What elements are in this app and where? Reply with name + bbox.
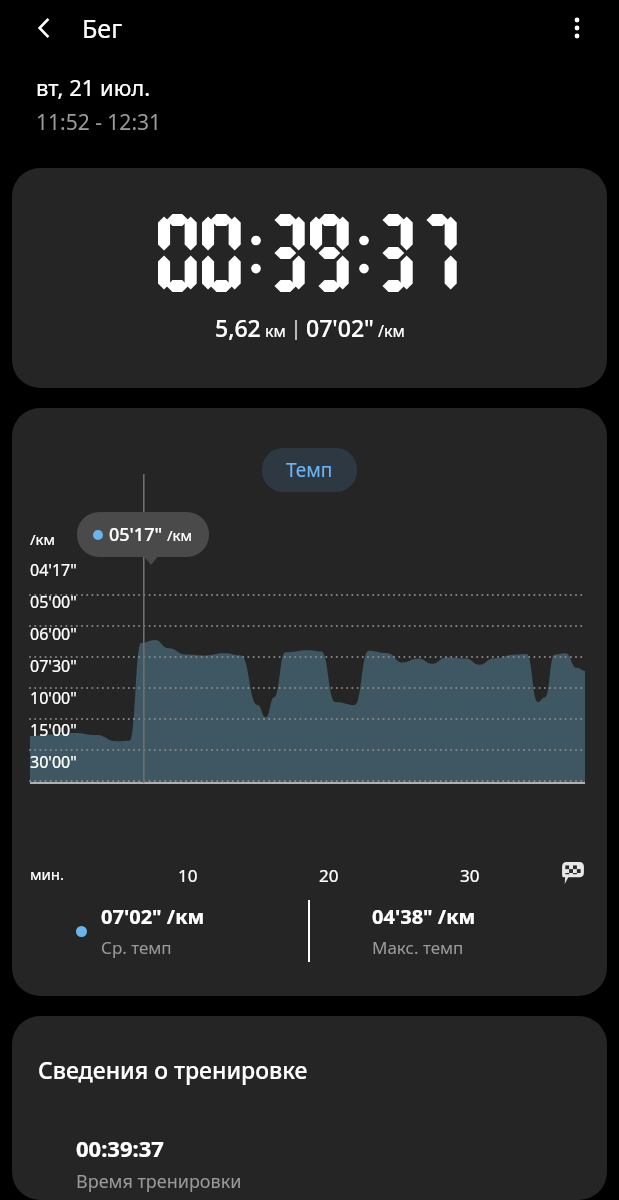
staticText: 10 [178,864,198,887]
staticText: Темп [286,457,333,483]
staticText: Ср. темп [101,936,172,959]
button[interactable]: 07'02" /км [12,903,308,959]
staticText: 00:39:37 [76,1133,164,1163]
staticText: мин. [30,864,65,884]
button[interactable]: Темп [262,448,357,492]
staticText: /км [30,529,56,549]
staticText: 07'30" [30,655,77,677]
staticText: 15'00" [30,719,77,741]
staticText: 5,62 [215,312,261,343]
staticText: /км [167,525,193,545]
staticText: 05'00" [30,591,77,613]
staticText: 10'00" [30,687,77,709]
staticText: км [265,320,286,342]
staticText: вт, 21 июл. [36,72,151,102]
staticText: 07'02" /км [101,903,205,930]
button[interactable]: 05'17" [77,512,209,557]
button[interactable]: 04'38" /км [310,903,607,959]
staticText: 06'00" [30,623,77,645]
button[interactable]: Сведения о тренировке [12,1016,607,1200]
staticText: 04'38" /км [372,903,476,930]
staticText: 07'02" [306,312,374,343]
staticText: Время тренировки [76,1169,242,1194]
staticText: 05'17" [109,522,163,547]
staticText: 30'00" [30,751,77,773]
button[interactable]: Back [22,6,66,50]
staticText: Макс. темп [372,936,464,959]
staticText: 20 [319,864,339,887]
staticText: 30 [460,864,480,887]
staticText: Бег [82,11,123,45]
other: Finish [560,860,586,886]
button[interactable]: More options [553,4,601,52]
button[interactable]: 5,62 [12,168,607,388]
staticText: /км [378,320,405,342]
staticText: Сведения о тренировке [38,1054,308,1085]
staticText: 11:52 - 12:31 [36,108,162,137]
staticText: 04'17" [30,559,77,581]
